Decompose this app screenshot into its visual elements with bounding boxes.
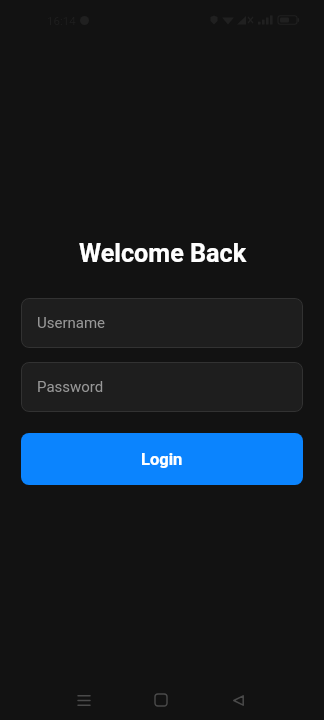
staticText: Welcome Back (79, 239, 247, 269)
staticText: Password (37, 378, 104, 396)
button[interactable]: Password (21, 362, 303, 412)
staticText: 16:14 (47, 14, 76, 27)
button[interactable]: Back (216, 678, 261, 720)
staticText: Username (37, 314, 106, 332)
button[interactable]: Login (21, 433, 303, 485)
button[interactable]: Username (21, 298, 303, 348)
button[interactable]: Home (138, 678, 183, 720)
staticText: Login (141, 450, 183, 469)
button[interactable]: Recent apps (61, 678, 106, 720)
